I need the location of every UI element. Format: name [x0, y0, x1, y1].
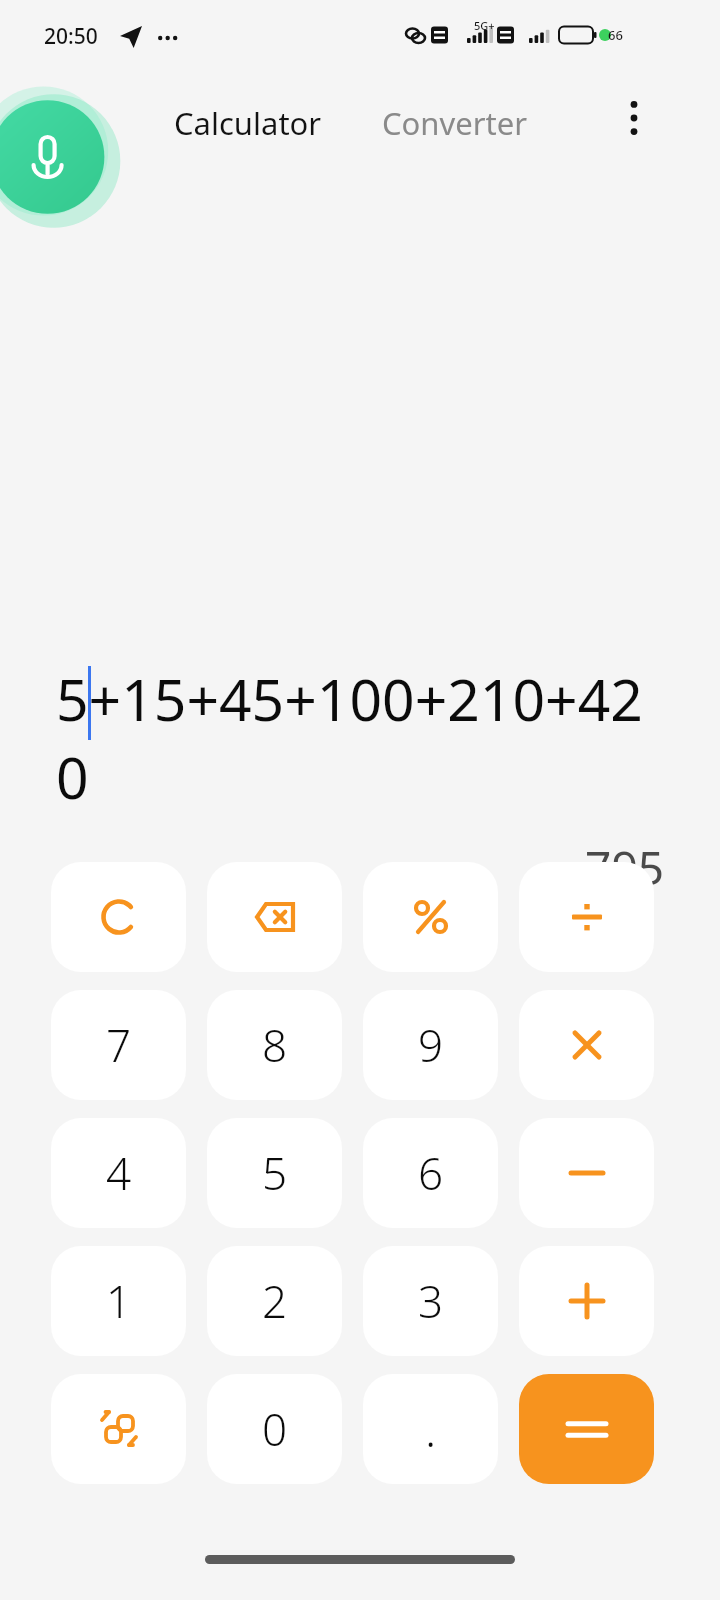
button[interactable]: Plus: [519, 1246, 654, 1356]
staticText: 5+15+45+100+210+420: [56, 660, 664, 816]
button[interactable]: 7: [51, 990, 186, 1100]
button[interactable]: 3: [363, 1246, 498, 1356]
button[interactable]: Backspace: [207, 862, 342, 972]
staticText: 6: [418, 1143, 444, 1203]
button[interactable]: Clear: [51, 862, 186, 972]
button[interactable]: Divide: [519, 862, 654, 972]
button[interactable]: 9: [363, 990, 498, 1100]
button[interactable]: 5: [207, 1118, 342, 1228]
staticText: 3: [418, 1271, 444, 1331]
button[interactable]: Multiply: [519, 990, 654, 1100]
staticText: Calculator: [174, 102, 322, 144]
staticText: 5G+: [474, 18, 495, 33]
button[interactable]: 1: [51, 1246, 186, 1356]
button[interactable]: .: [363, 1374, 498, 1484]
staticText: 8: [262, 1015, 288, 1075]
button[interactable]: More options: [608, 92, 660, 144]
staticText: 1: [106, 1271, 132, 1331]
button[interactable]: 6: [363, 1118, 498, 1228]
staticText: = 795: [56, 836, 664, 899]
staticText: Converter: [382, 102, 528, 144]
staticText: 4: [106, 1143, 132, 1203]
button[interactable]: Scientific functions: [51, 1374, 186, 1484]
staticText: 5: [262, 1143, 288, 1203]
button[interactable]: Minus: [519, 1118, 654, 1228]
button[interactable]: 0: [207, 1374, 342, 1484]
staticText: .: [425, 1398, 437, 1461]
staticText: 7: [106, 1015, 132, 1075]
staticText: 0: [262, 1399, 288, 1459]
button[interactable]: 4: [51, 1118, 186, 1228]
button[interactable]: 2: [207, 1246, 342, 1356]
staticText: 2: [262, 1271, 288, 1331]
button[interactable]: Equals: [519, 1374, 654, 1484]
staticText: 20:50: [44, 22, 98, 51]
button[interactable]: 8: [207, 990, 342, 1100]
button[interactable]: Percent: [363, 862, 498, 972]
button[interactable]: Converter: [378, 98, 532, 148]
button[interactable]: Voice input: [0, 86, 120, 228]
staticText: 66: [608, 26, 623, 44]
staticText: 9: [418, 1015, 444, 1075]
button[interactable]: Calculator: [170, 98, 326, 148]
